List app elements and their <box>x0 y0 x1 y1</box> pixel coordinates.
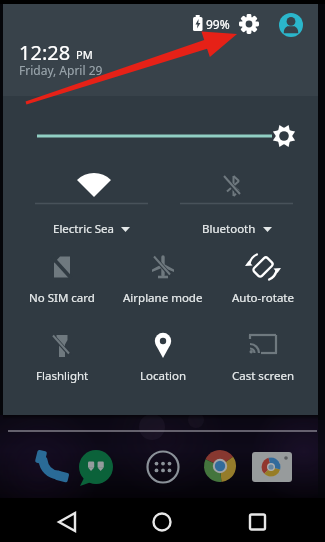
button[interactable] <box>30 120 300 152</box>
staticText: 99% <box>206 16 230 32</box>
staticText: Cast screen <box>232 368 294 384</box>
button[interactable] <box>52 508 82 536</box>
staticText: Auto-rotate <box>232 290 294 306</box>
staticText: No SIM card <box>29 290 95 306</box>
button[interactable] <box>12 250 112 308</box>
button[interactable] <box>145 450 181 488</box>
staticText: Friday, April 29 <box>19 62 103 78</box>
button[interactable] <box>113 328 213 386</box>
button[interactable] <box>238 12 262 36</box>
button[interactable] <box>243 508 273 536</box>
button[interactable] <box>147 508 177 536</box>
button[interactable] <box>79 450 115 488</box>
staticText: Electric Sea <box>53 221 114 237</box>
button[interactable] <box>213 250 313 308</box>
button[interactable] <box>13 165 170 240</box>
button[interactable] <box>279 13 304 38</box>
button[interactable] <box>12 328 112 386</box>
staticText: Flashlight <box>36 368 89 384</box>
staticText: Airplane mode <box>123 290 203 306</box>
button[interactable] <box>113 250 213 308</box>
staticText: Bluetooth <box>202 221 256 237</box>
staticText: Location <box>140 368 187 384</box>
button[interactable] <box>252 450 294 486</box>
button[interactable] <box>160 165 315 240</box>
button[interactable] <box>35 448 71 486</box>
button[interactable] <box>202 450 238 488</box>
staticText: PM <box>76 47 93 62</box>
staticText: 12:28 <box>19 39 71 66</box>
button[interactable] <box>213 328 313 386</box>
